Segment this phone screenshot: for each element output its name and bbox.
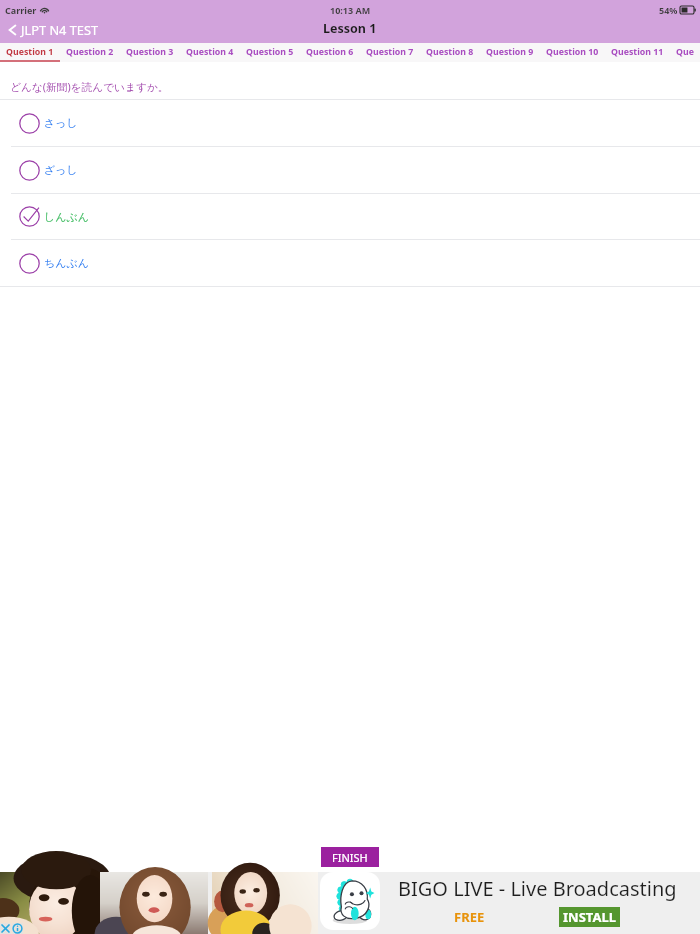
staticText: Question 3 — [126, 46, 174, 58]
staticText: FREE — [454, 908, 485, 926]
staticText: ちんぶん — [44, 256, 90, 270]
staticText: Question 6 — [306, 46, 354, 58]
staticText: FINISH — [332, 850, 368, 865]
button[interactable]: ちんぶん — [0, 240, 700, 286]
button[interactable]: Close ad — [0, 923, 11, 934]
staticText: ざっし — [44, 163, 78, 177]
staticText: Lesson 1 — [323, 20, 377, 37]
staticText: さっし — [44, 116, 78, 130]
button[interactable]: Question 4 — [180, 43, 240, 62]
button[interactable]: Question 9 — [480, 43, 540, 62]
button[interactable]: INSTALL — [559, 907, 620, 927]
staticText: 10:13 AM — [330, 4, 371, 16]
button[interactable]: FINISH — [321, 847, 379, 867]
staticText: INSTALL — [563, 908, 616, 926]
button[interactable]: Question 3 — [120, 43, 180, 62]
button[interactable]: Question 11 — [605, 43, 670, 62]
button[interactable]: Question 7 — [360, 43, 420, 62]
staticText: JLPT N4 TEST — [21, 21, 99, 38]
button[interactable]: Question 2 — [60, 43, 120, 62]
staticText: Carrier — [5, 4, 37, 16]
staticText: Question 1 — [6, 46, 54, 58]
staticText: 54% — [659, 4, 678, 16]
staticText: どんな(新聞)を読んでいますか。 — [10, 80, 169, 95]
staticText: しんぶん — [44, 210, 90, 224]
button[interactable]: しんぶん — [0, 194, 700, 239]
staticText: Question 8 — [426, 46, 474, 58]
staticText: Question 2 — [66, 46, 114, 58]
button[interactable]: Question 8 — [420, 43, 480, 62]
button[interactable]: Question 6 — [300, 43, 360, 62]
button[interactable]: Question 1 — [0, 43, 60, 62]
button[interactable]: さっし — [0, 100, 700, 146]
staticText: BIGO LIVE - Live Broadcasting — [398, 875, 677, 902]
staticText: Question 4 — [186, 46, 234, 58]
button[interactable]: Question 5 — [240, 43, 300, 62]
button[interactable]: Question 10 — [540, 43, 605, 62]
button[interactable]: Question 12 — [670, 43, 700, 62]
button[interactable]: ざっし — [0, 147, 700, 193]
staticText: Question 5 — [246, 46, 294, 58]
staticText: Question 11 — [611, 46, 664, 58]
staticText: Question 9 — [486, 46, 534, 58]
staticText: Question 12 — [676, 46, 694, 58]
staticText: Question 7 — [366, 46, 414, 58]
button[interactable]: Back to JLPT N4 TEST — [0, 23, 107, 40]
staticText: Question 10 — [546, 46, 599, 58]
button[interactable]: Ad info — [12, 923, 23, 934]
